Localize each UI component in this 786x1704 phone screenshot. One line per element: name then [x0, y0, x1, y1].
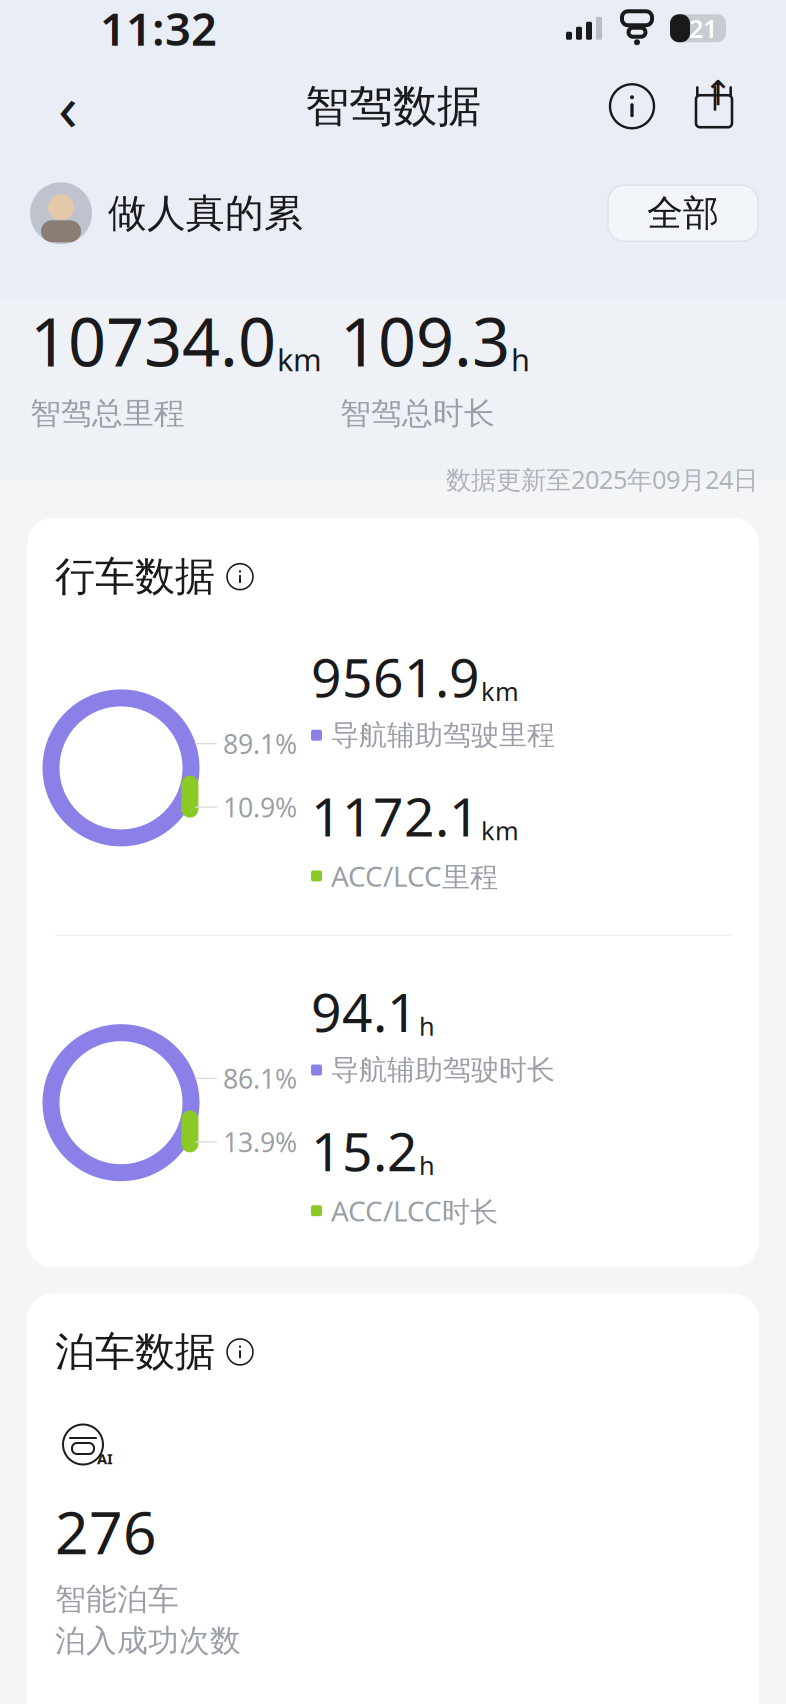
- staticText: 泊入成功次数: [55, 1622, 241, 1660]
- staticText: 86.1%: [223, 1061, 297, 1096]
- staticText: km: [277, 339, 322, 380]
- staticText: 1172.1: [311, 780, 480, 851]
- staticText: 导航辅助驾驶时长: [331, 1053, 555, 1087]
- staticText: 276: [55, 1492, 157, 1570]
- staticText: km: [481, 814, 519, 847]
- staticText: 智驾总里程: [30, 395, 185, 432]
- staticText: 数据更新至2025年09月24日: [446, 462, 758, 496]
- staticText: AI: [97, 1449, 113, 1468]
- button[interactable]: 泊车数据说明: [55, 1327, 253, 1376]
- staticText: h: [511, 339, 530, 380]
- staticText: h: [419, 1009, 435, 1043]
- button[interactable]: 说明: [602, 76, 662, 136]
- staticText: 94.1: [311, 976, 418, 1047]
- button[interactable]: 行车数据说明: [55, 552, 253, 601]
- staticText: 智驾总时长: [340, 395, 495, 432]
- staticText: 11:32: [100, 0, 217, 58]
- staticText: 10.9%: [223, 789, 297, 825]
- staticText: ACC/LCC里程: [331, 857, 498, 895]
- staticText: h: [419, 1148, 435, 1182]
- button[interactable]: 分享: [684, 76, 744, 136]
- staticText: km: [481, 674, 519, 708]
- staticText: 10734.0: [30, 296, 276, 385]
- staticText: ‹: [58, 64, 78, 149]
- staticText: 行车数据: [55, 552, 215, 601]
- staticText: ↑: [703, 74, 732, 113]
- staticText: 13.9%: [223, 1124, 297, 1159]
- staticText: 15.2: [311, 1115, 418, 1186]
- staticText: 21: [689, 11, 717, 45]
- staticText: 9561.9: [311, 641, 480, 712]
- staticText: 做人真的累: [108, 189, 303, 237]
- staticText: 智能泊车: [55, 1580, 179, 1618]
- button[interactable]: 全部: [608, 185, 758, 241]
- staticText: ACC/LCC时长: [331, 1192, 498, 1229]
- staticText: 全部: [647, 191, 719, 235]
- staticText: 89.1%: [223, 726, 297, 761]
- button[interactable]: 做人真的累: [30, 182, 303, 244]
- staticText: 智驾数据: [305, 79, 481, 133]
- staticText: 导航辅助驾驶里程: [331, 718, 555, 752]
- button[interactable]: 返回: [36, 74, 100, 138]
- staticText: 泊车数据: [55, 1327, 215, 1376]
- staticText: 109.3: [340, 296, 510, 385]
